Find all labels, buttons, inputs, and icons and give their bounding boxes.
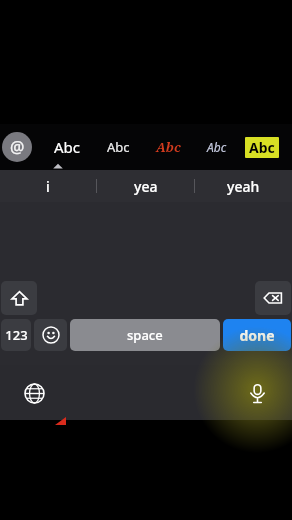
button[interactable]: Abc	[152, 138, 185, 156]
button[interactable]: done	[223, 319, 291, 351]
staticText: i	[46, 177, 50, 196]
button[interactable]: Abc	[103, 138, 134, 156]
staticText: @	[10, 136, 25, 158]
button[interactable]: Change language	[18, 377, 50, 409]
button[interactable]: Abc	[245, 137, 279, 158]
staticText: space	[127, 326, 163, 344]
staticText: done	[239, 326, 275, 345]
button[interactable]: 123	[1, 319, 31, 351]
staticText: Abc	[156, 138, 181, 156]
button[interactable]: yeah	[195, 170, 292, 202]
staticText: yeah	[227, 177, 260, 196]
button[interactable]: Backspace	[255, 281, 291, 315]
staticText: yea	[134, 177, 158, 196]
staticText: Abc	[54, 137, 81, 157]
button[interactable]: Abc	[203, 139, 231, 155]
button[interactable]: Shift	[1, 281, 37, 315]
button[interactable]: Abc	[50, 137, 85, 157]
staticText: Abc	[107, 138, 130, 156]
button[interactable]: i	[0, 170, 96, 202]
staticText: 123	[5, 326, 28, 344]
button[interactable]: Voice input	[240, 376, 274, 410]
staticText: Abc	[249, 138, 275, 157]
button[interactable]: Mention	[2, 132, 32, 162]
staticText: Abc	[207, 139, 227, 155]
button[interactable]: yea	[97, 170, 194, 202]
button[interactable]: Emoji	[34, 319, 67, 351]
button[interactable]: space	[70, 319, 220, 351]
